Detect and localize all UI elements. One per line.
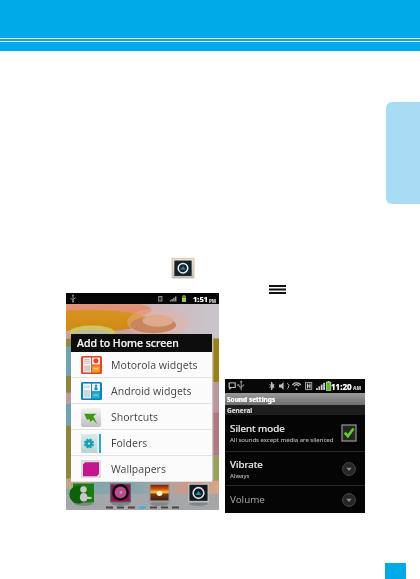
button[interactable]: Side navigation tab [386,102,420,204]
button[interactable]: Volume [225,486,365,513]
button[interactable]: Wallpapers [71,456,212,481]
staticText: 11:20 [331,381,352,392]
staticText: General [227,406,253,415]
staticText: Silent mode [230,422,285,435]
staticText: Wallpapers [111,462,166,476]
staticText: Add to Home screen [77,336,179,350]
button[interactable]: Vibrate [225,452,365,485]
staticText: Volume [230,493,265,506]
button[interactable]: Silent mode [225,415,365,451]
staticText: PM [209,298,217,304]
button[interactable]: Menu [269,285,286,294]
staticText: Sound settings [227,395,276,404]
staticText: Always [230,472,250,480]
button[interactable]: Android widgets [71,378,212,403]
staticText: Vibrate [230,458,263,471]
staticText: AM [353,385,362,392]
staticText: All sounds except media are silenced [230,436,334,444]
button[interactable]: All apps [171,257,195,279]
button[interactable]: Shortcuts [71,404,212,429]
staticText: Android widgets [111,384,192,398]
staticText: Shortcuts [111,410,159,424]
button[interactable]: Folders [71,430,212,455]
staticText: Motorola widgets [111,358,198,372]
button[interactable]: Motorola widgets [71,352,212,377]
staticText: 1:51 [193,294,208,304]
staticText: Folders [111,436,148,450]
